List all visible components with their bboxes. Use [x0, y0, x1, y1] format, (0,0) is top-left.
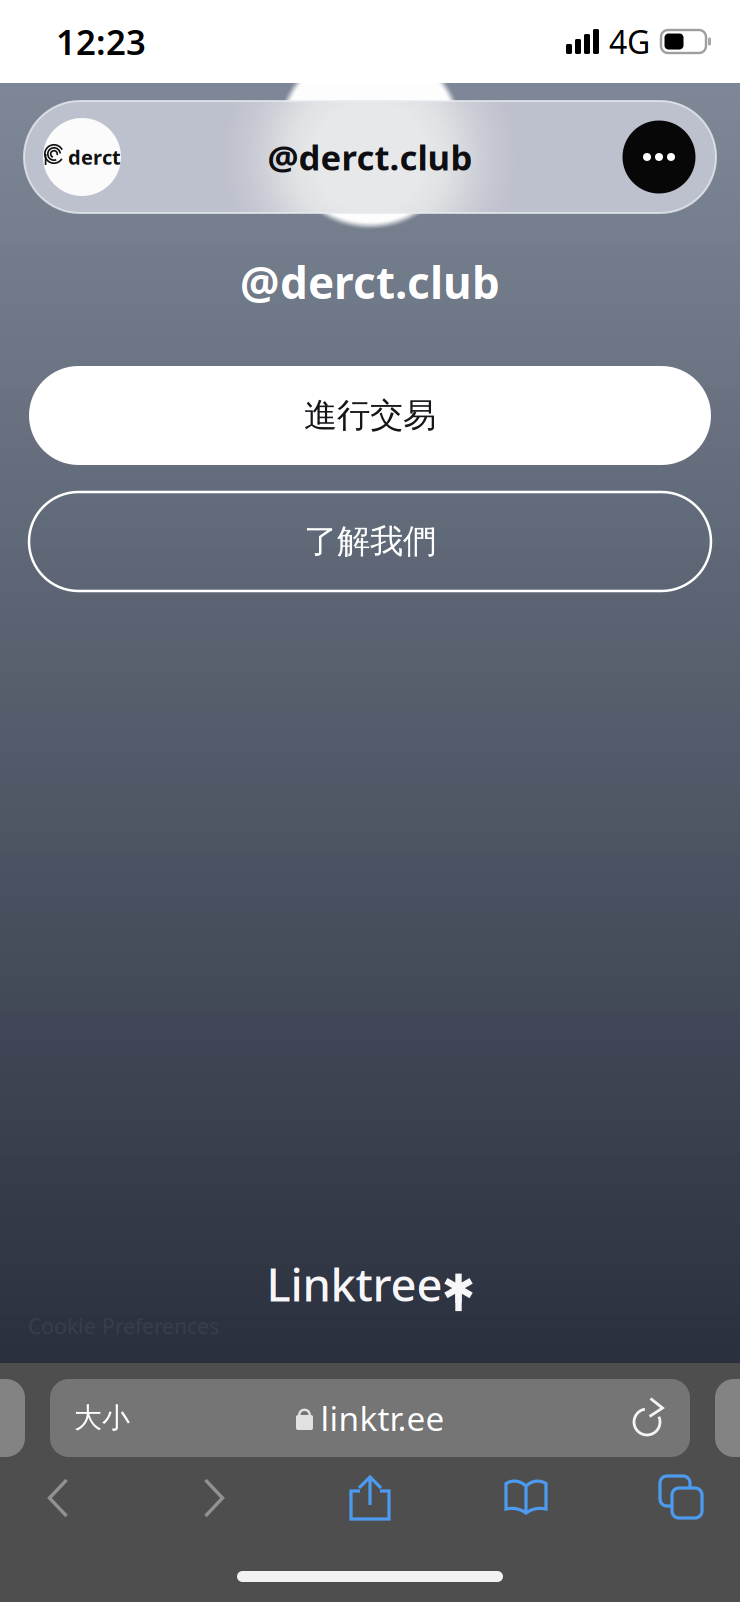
button[interactable]: 了解我們: [29, 492, 711, 591]
button[interactable]: Cookie Preferences: [24, 1307, 716, 1345]
button[interactable]: 大小: [50, 1379, 690, 1457]
staticText: 了解我們: [304, 521, 436, 562]
staticText: 12:23: [56, 18, 146, 64]
staticText: 進行交易: [304, 395, 436, 436]
button[interactable]: Back: [16, 1469, 100, 1527]
staticText: 4G: [609, 20, 650, 63]
staticText: @derct.club: [267, 134, 472, 180]
staticText: linktr.ee: [320, 1396, 444, 1440]
staticText: 大小: [74, 1401, 130, 1435]
button[interactable]: 進行交易: [29, 366, 711, 465]
staticText: Linktree: [266, 1254, 442, 1314]
button[interactable]: Share: [328, 1469, 412, 1527]
staticText: derct: [68, 144, 121, 170]
button[interactable]: Tabs: [640, 1469, 724, 1527]
button[interactable]: derct home: [43, 118, 121, 196]
button[interactable]: Forward: [172, 1469, 256, 1527]
button[interactable]: Bookmarks: [484, 1469, 568, 1527]
staticText: Cookie Preferences: [28, 1312, 219, 1340]
button[interactable]: More options: [621, 119, 697, 195]
staticText: @derct.club: [240, 253, 500, 311]
